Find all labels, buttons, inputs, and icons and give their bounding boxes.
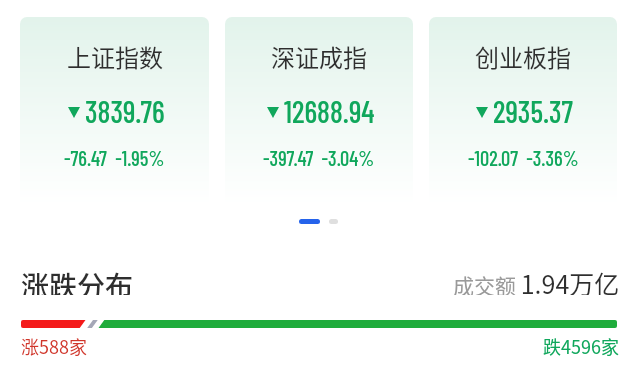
staticText: -102.07 -3.36% — [468, 145, 579, 170]
staticText: 成交额 1.94万亿 — [453, 265, 620, 295]
staticText: 深证成指 — [271, 39, 367, 74]
staticText: 12688.94 — [284, 93, 375, 129]
button[interactable]: 创业板指 — [429, 17, 617, 205]
button[interactable]: Page 1 — [299, 219, 320, 224]
staticText: 涨588家 — [21, 333, 87, 359]
staticText: 跌4596家 — [543, 333, 619, 359]
staticText: 涨跌分布 — [21, 265, 134, 295]
button[interactable]: 深证成指 — [225, 17, 413, 205]
staticText: 2935.37 — [493, 93, 574, 129]
button[interactable]: 上证指数 — [20, 17, 209, 205]
staticText: 创业板指 — [475, 39, 571, 74]
button[interactable]: Page 2 — [329, 219, 338, 224]
staticText: -397.47 -3.04% — [263, 145, 375, 170]
staticText: 上证指数 — [67, 39, 163, 74]
staticText: 3839.76 — [85, 93, 165, 129]
staticText: -76.47 -1.95% — [64, 145, 165, 170]
